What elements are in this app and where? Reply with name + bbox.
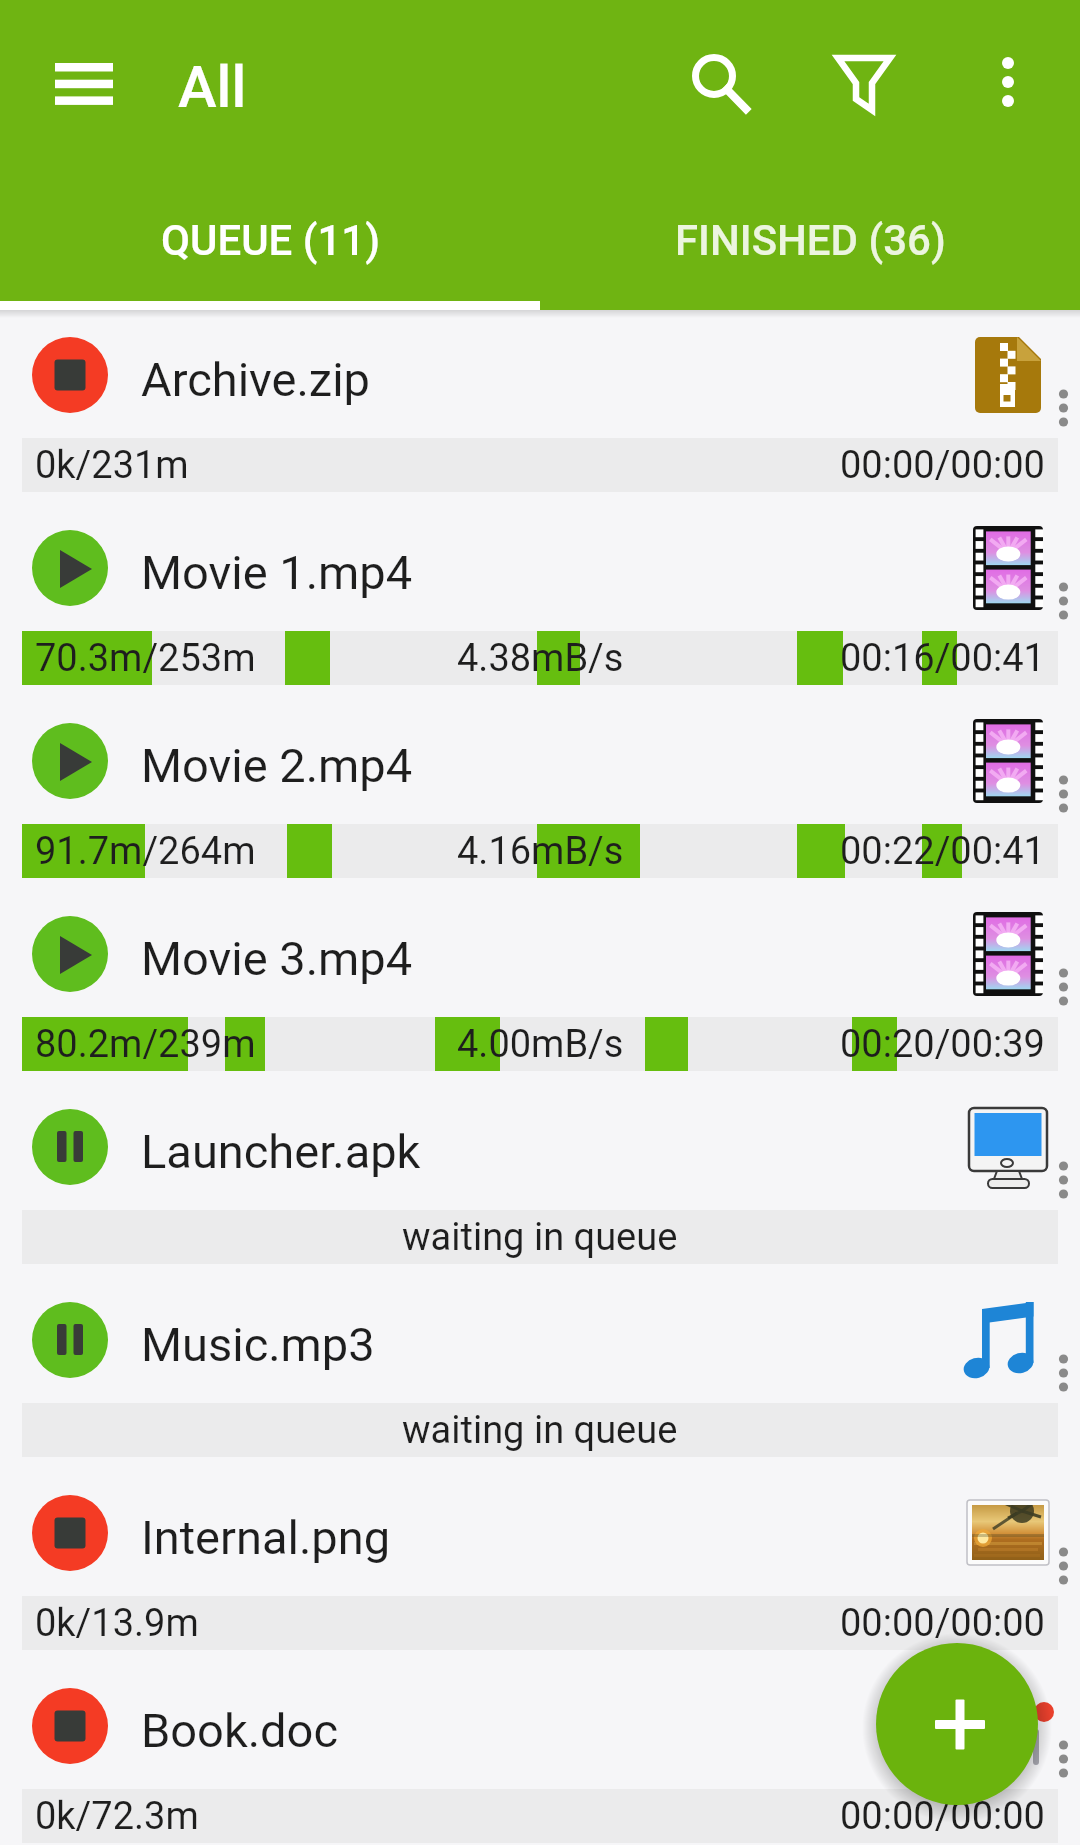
staticText: 00:22/00:41	[840, 829, 1045, 874]
staticText: 00:00/00:00	[840, 1601, 1045, 1646]
staticText: 70.3m/253m	[35, 636, 256, 681]
staticText: 00:16/00:41	[840, 636, 1045, 681]
staticText: 00:20/00:39	[840, 1022, 1045, 1067]
staticText: Movie 1.mp4	[141, 545, 413, 600]
button[interactable]: Archive.zip	[0, 318, 1080, 438]
staticText: Launcher.apk	[141, 1124, 421, 1179]
staticText: Movie 2.mp4	[141, 738, 413, 793]
staticText: Internal.png	[141, 1510, 391, 1565]
button[interactable]	[32, 1109, 108, 1185]
staticText: Movie 3.mp4	[141, 931, 413, 986]
staticText: 91.7m/264m	[35, 829, 256, 874]
button[interactable]: Movie 2.mp4	[0, 704, 1080, 824]
staticText: 0k/231m	[35, 443, 189, 488]
staticText: 0k/72.3m	[35, 1794, 199, 1839]
button[interactable]: Music.mp3	[0, 1283, 1080, 1403]
staticText: 80.2m/239m	[35, 1022, 256, 1067]
button[interactable]	[826, 38, 902, 114]
button[interactable]: Movie 3.mp4	[0, 897, 1080, 1017]
staticText: 4.38mB/s	[457, 636, 624, 681]
button[interactable]	[676, 38, 752, 114]
button[interactable]	[32, 337, 108, 413]
button[interactable]: Movie 1.mp4	[0, 511, 1080, 631]
staticText: 00:00/00:00	[840, 1794, 1045, 1839]
staticText: FINISHED (36)	[675, 216, 946, 265]
staticText: Book.doc	[141, 1703, 339, 1758]
button[interactable]	[32, 530, 108, 606]
button[interactable]	[32, 916, 108, 992]
staticText: QUEUE (11)	[161, 216, 380, 265]
button[interactable]: Launcher.apk	[0, 1090, 1080, 1210]
staticText: waiting in queue	[402, 1215, 678, 1260]
staticText: All	[178, 53, 247, 121]
button[interactable]: QUEUE (11)	[0, 170, 540, 310]
staticText: waiting in queue	[402, 1408, 678, 1453]
button[interactable]: Internal.png	[0, 1476, 1080, 1596]
button[interactable]	[38, 46, 130, 122]
button[interactable]	[970, 38, 1046, 114]
staticText: 4.16mB/s	[457, 829, 624, 874]
button[interactable]	[32, 1302, 108, 1378]
staticText: 00:00/00:00	[840, 443, 1045, 488]
button[interactable]	[32, 1495, 108, 1571]
button[interactable]	[32, 1688, 108, 1764]
staticText: 0k/13.9m	[35, 1601, 199, 1646]
staticText: Archive.zip	[141, 352, 370, 407]
button[interactable]	[32, 723, 108, 799]
button[interactable]: Book.doc	[0, 1669, 1080, 1789]
staticText: 4.00mB/s	[457, 1022, 624, 1067]
button[interactable]: FINISHED (36)	[540, 170, 1080, 310]
button[interactable]	[876, 1643, 1038, 1805]
staticText: Music.mp3	[141, 1317, 375, 1372]
